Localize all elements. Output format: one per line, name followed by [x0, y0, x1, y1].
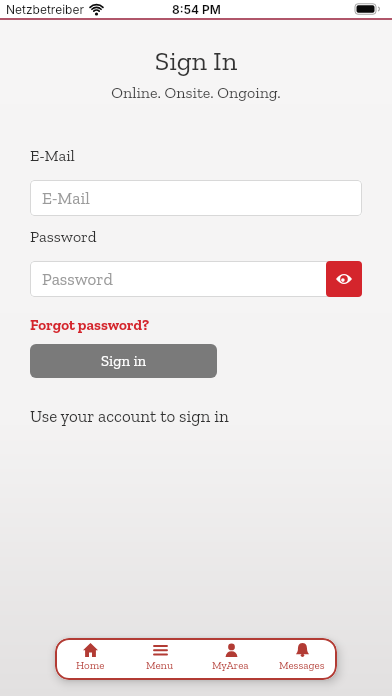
button[interactable]: E-Mail [30, 180, 362, 216]
staticText: Sign in [101, 352, 147, 370]
button[interactable]: Home [55, 638, 125, 680]
staticText: Password [30, 227, 97, 246]
button[interactable]: Messages [266, 638, 337, 680]
staticText: E-Mail [30, 146, 75, 165]
staticText: MyArea [212, 659, 249, 672]
staticText: E-Mail [42, 188, 90, 208]
staticText: Sign In [0, 45, 392, 77]
staticText: Password [42, 269, 113, 289]
staticText: Use your account to sign in [30, 406, 229, 426]
button[interactable]: MyArea [195, 638, 266, 680]
button[interactable]: Sign in [30, 344, 217, 378]
staticText: Online. Onsite. Ongoing. [0, 83, 392, 102]
staticText: Messages [279, 659, 325, 672]
button[interactable] [326, 261, 362, 297]
staticText: Menu [146, 659, 174, 672]
staticText: Home [76, 659, 105, 672]
staticText: 8:54 PM [172, 2, 221, 17]
staticText: Netzbetreiber [6, 2, 84, 17]
button[interactable]: Forgot password? [30, 316, 150, 334]
button[interactable]: Password [30, 261, 362, 297]
button[interactable]: Menu [125, 638, 195, 680]
